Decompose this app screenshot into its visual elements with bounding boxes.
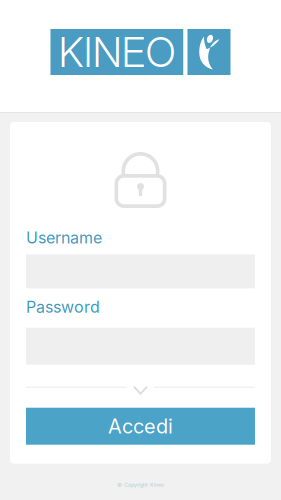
button[interactable]: Accedi [26,408,255,445]
staticText: © Copyright Kineo [117,481,164,488]
staticText: Username [26,228,102,247]
staticText: KINEO [58,27,175,77]
staticText: Accedi [108,414,173,438]
staticText: Password [26,297,100,317]
